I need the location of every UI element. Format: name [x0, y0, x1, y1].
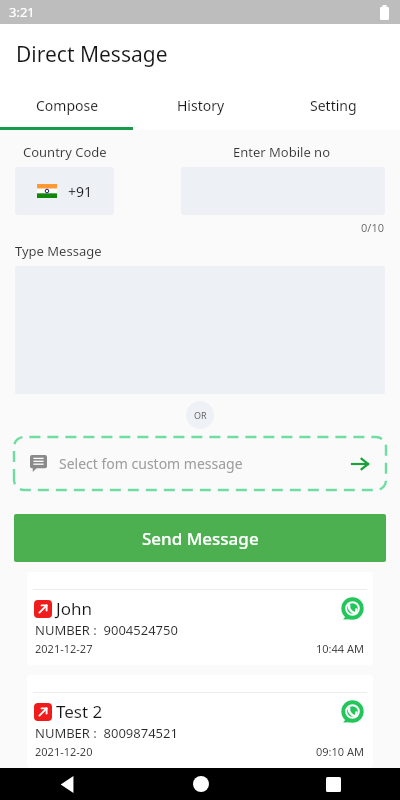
button[interactable]: Select fom custom message [14, 437, 386, 490]
staticText: Select fom custom message [59, 454, 243, 473]
button[interactable]: Compose [0, 84, 134, 127]
button[interactable]: Home [134, 768, 267, 800]
staticText: Type Message [15, 242, 102, 260]
other: Send on WhatsApp [341, 700, 364, 723]
staticText: 10:44 AM [316, 641, 364, 656]
staticText: 2021-12-20 [35, 744, 93, 759]
button[interactable]: History [134, 84, 267, 127]
staticText: 0/10 [361, 220, 384, 235]
other: Open custom messages [350, 454, 370, 474]
button[interactable]: Send Message [14, 514, 386, 562]
button[interactable]: Recent apps [267, 768, 400, 800]
button[interactable]: +91 [15, 167, 114, 215]
staticText: Send Message [142, 527, 259, 550]
button[interactable]: John [27, 572, 373, 665]
staticText: Country Code [23, 143, 107, 161]
button[interactable]: Back [0, 768, 134, 800]
button[interactable]: Test 2 [27, 675, 373, 768]
staticText: Direct Message [16, 40, 168, 69]
staticText: 09:10 AM [316, 744, 364, 759]
staticText: NUMBER : 8009874521 [35, 724, 178, 742]
staticText: History [177, 96, 225, 115]
staticText: Compose [36, 96, 99, 115]
staticText: Enter Mobile no [233, 143, 331, 161]
button[interactable]: Setting [267, 84, 400, 127]
staticText: OR [194, 409, 207, 421]
staticText: Test 2 [56, 700, 103, 723]
staticText: 3:21 [9, 3, 35, 21]
staticText: 2021-12-27 [35, 641, 93, 656]
other: Send on WhatsApp [341, 597, 364, 620]
staticText: John [56, 597, 92, 620]
staticText: NUMBER : 9004524750 [35, 621, 178, 639]
staticText: +91 [68, 182, 93, 201]
staticText: Setting [310, 96, 357, 115]
